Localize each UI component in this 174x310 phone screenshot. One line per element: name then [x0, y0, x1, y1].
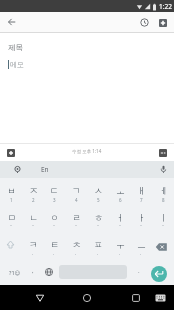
staticText: 8: [162, 197, 165, 203]
staticText: ㅈ: [29, 185, 38, 196]
staticText: ˜: [140, 224, 143, 230]
button[interactable]: 2: [22, 191, 44, 209]
button[interactable]: ?1☺: [4, 265, 26, 279]
button[interactable]: 3: [43, 191, 65, 209]
button[interactable]: ㅓ: [109, 208, 131, 226]
staticText: ,: [32, 267, 34, 275]
button[interactable]: 7: [130, 191, 152, 209]
staticText: ㅎ: [94, 212, 103, 223]
button[interactable]: [44, 267, 54, 277]
button[interactable]: [7, 149, 15, 157]
button[interactable]: ㅣ: [152, 208, 174, 226]
staticText: ㄴ: [29, 212, 38, 223]
button[interactable]: ˜: [109, 218, 131, 236]
staticText: ˜: [162, 224, 165, 230]
button[interactable]: 4: [65, 191, 87, 209]
button[interactable]: [140, 18, 149, 27]
button[interactable]: ㅜ: [109, 235, 131, 253]
staticText: ㅗ: [116, 185, 125, 196]
button[interactable]: ·: [43, 245, 65, 263]
staticText: 1: [10, 197, 13, 203]
button[interactable]: ˜: [130, 218, 152, 236]
staticText: ㅡ: [137, 239, 146, 250]
staticText: 5: [97, 197, 100, 203]
staticText: 메모: [10, 60, 24, 69]
button[interactable]: 5: [87, 191, 109, 209]
staticText: ˜: [97, 224, 100, 230]
button[interactable]: ˜: [43, 218, 65, 236]
button[interactable]: ㅐ: [130, 181, 152, 199]
button[interactable]: ˜: [0, 218, 22, 236]
staticText: ㅊ: [72, 239, 81, 250]
staticText: 수정 오후 1:14: [72, 148, 102, 154]
button[interactable]: [82, 293, 92, 303]
button[interactable]: ˜: [22, 218, 44, 236]
staticText: 2: [32, 197, 35, 203]
button[interactable]: ㄴ: [22, 208, 44, 226]
button[interactable]: ·: [87, 245, 109, 263]
staticText: ˜: [53, 224, 56, 230]
staticText: 6: [119, 197, 122, 203]
button[interactable]: ㅎ: [87, 208, 109, 226]
button[interactable]: ㄹ: [65, 208, 87, 226]
staticText: ˜: [75, 224, 78, 230]
staticText: ·: [75, 251, 77, 257]
button[interactable]: ˜: [87, 218, 109, 236]
button[interactable]: ㄱ: [65, 181, 87, 199]
button[interactable]: ㅏ: [130, 208, 152, 226]
staticText: ˜: [32, 224, 35, 230]
button[interactable]: [5, 239, 16, 250]
button[interactable]: ˜: [65, 218, 87, 236]
button[interactable]: [159, 19, 167, 27]
button[interactable]: ㅌ: [43, 235, 65, 253]
button[interactable]: [131, 293, 141, 303]
staticText: ㄷ: [50, 185, 59, 196]
button[interactable]: ·: [22, 245, 44, 263]
button[interactable]: ㅍ: [87, 235, 109, 253]
button[interactable]: ㅊ: [65, 235, 87, 253]
button[interactable]: 8: [152, 191, 174, 209]
staticText: ㅐ: [137, 185, 146, 196]
button[interactable]: ㅅ: [87, 181, 109, 199]
button[interactable]: [13, 165, 22, 174]
button[interactable]: [155, 294, 166, 302]
button[interactable]: ,: [22, 262, 44, 280]
button[interactable]: ㅂ: [0, 181, 22, 199]
button[interactable]: 6: [109, 191, 131, 209]
button[interactable]: ㅈ: [22, 181, 44, 199]
staticText: ㄱ: [72, 185, 81, 196]
button[interactable]: ㅇ: [43, 208, 65, 226]
staticText: ㅋ: [29, 239, 38, 250]
button[interactable]: En: [41, 165, 49, 174]
staticText: ㅍ: [94, 239, 103, 250]
button[interactable]: [155, 242, 168, 252]
button[interactable]: ㄷ: [43, 181, 65, 199]
button[interactable]: ㅁ: [0, 208, 22, 226]
staticText: ·: [97, 251, 99, 257]
staticText: ㅜ: [116, 239, 125, 250]
staticText: ㅔ: [159, 185, 168, 196]
staticText: ·: [140, 251, 142, 257]
staticText: ㅓ: [116, 212, 125, 223]
button[interactable]: [35, 293, 45, 303]
staticText: ㅌ: [50, 239, 59, 250]
button[interactable]: [6, 16, 18, 28]
button[interactable]: ·: [65, 245, 87, 263]
button[interactable]: ㅡ: [130, 235, 152, 253]
button[interactable]: [151, 266, 167, 282]
button[interactable]: ㅋ: [22, 235, 44, 253]
staticText: ㅏ: [137, 212, 146, 223]
button[interactable]: ·: [130, 245, 152, 263]
staticText: .: [138, 267, 140, 275]
button[interactable]: [159, 165, 168, 174]
button[interactable]: ˜: [152, 218, 174, 236]
button[interactable]: [159, 149, 167, 157]
button[interactable]: 1: [0, 191, 22, 209]
button[interactable]: ㅗ: [109, 181, 131, 199]
button[interactable]: ·: [109, 245, 131, 263]
button[interactable]: ㅔ: [152, 181, 174, 199]
staticText: 1:22: [159, 2, 172, 11]
staticText: 제목: [8, 43, 23, 52]
